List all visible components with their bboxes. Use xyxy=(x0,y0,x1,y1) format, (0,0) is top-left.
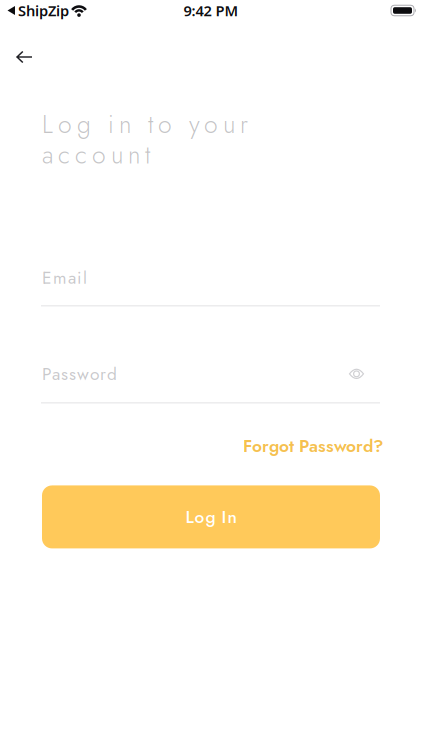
button[interactable]: Show password xyxy=(349,369,364,379)
button[interactable]: L o g I n xyxy=(42,485,380,548)
staticText: E m a i l xyxy=(42,265,87,290)
staticText: Forgot Password? xyxy=(243,433,383,458)
staticText: 9:42 PM xyxy=(183,1,238,20)
staticText: P a s s w o r d xyxy=(42,361,117,386)
button[interactable]: Back xyxy=(16,51,32,63)
staticText: L o g I n xyxy=(185,504,236,529)
staticText: Log in to your account xyxy=(42,106,255,173)
button[interactable]: Return to ShipZip xyxy=(7,1,69,20)
button[interactable]: Forgot Password? xyxy=(243,433,383,458)
staticText: ShipZip xyxy=(18,1,69,20)
